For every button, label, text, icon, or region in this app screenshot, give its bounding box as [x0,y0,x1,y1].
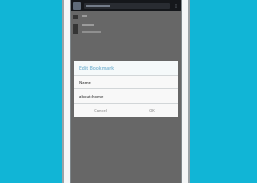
staticText: Edit Bookmark [79,65,115,72]
button[interactable]: Cancel [74,104,126,117]
staticText: about:home [79,94,104,99]
button[interactable]: App icon [73,2,81,10]
button[interactable] [84,3,170,9]
button[interactable]: Name [74,76,178,88]
button[interactable]: OK [126,104,178,117]
button[interactable]: App icon [71,0,181,11]
staticText: OK [149,108,155,113]
button[interactable]: Bookmark [73,24,181,34]
button[interactable]: about:home [74,89,178,103]
staticText: Cancel [94,108,107,113]
button[interactable]: Menu [173,3,179,9]
button[interactable]: Bookmark [73,15,181,19]
staticText: Name [79,80,91,85]
